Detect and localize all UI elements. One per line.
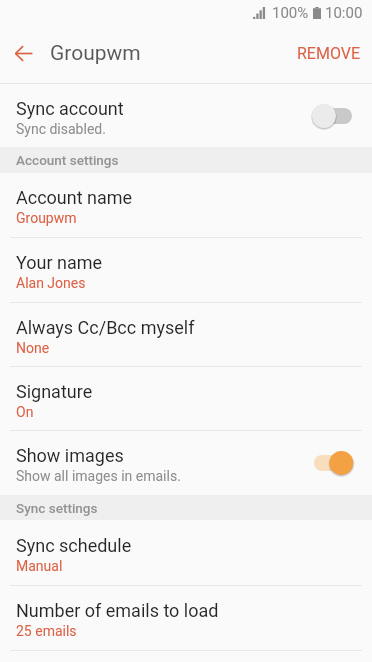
staticText: On <box>16 404 34 420</box>
staticText: Manual <box>16 558 63 574</box>
button[interactable]: Off <box>313 103 353 129</box>
staticText: Sync settings <box>16 500 98 516</box>
button[interactable]: Always Cc/Bcc myself <box>0 302 372 366</box>
button[interactable]: Signature <box>0 366 372 430</box>
button[interactable] <box>0 650 372 662</box>
staticText: 10:00 <box>325 4 363 22</box>
button[interactable]: Navigate up <box>0 30 47 77</box>
button[interactable]: REMOVE <box>286 32 372 75</box>
staticText: Groupwm <box>50 41 141 66</box>
staticText: Groupwm <box>16 210 77 226</box>
staticText: Account name <box>16 187 133 208</box>
staticText: Show all images in emails. <box>16 468 181 484</box>
button[interactable]: Your name <box>0 237 372 302</box>
staticText: Sync disabled. <box>16 121 106 137</box>
staticText: Show images <box>16 445 124 466</box>
button[interactable]: Number of emails to load <box>0 585 372 650</box>
button[interactable]: Sync schedule <box>0 520 372 585</box>
staticText: Number of emails to load <box>16 600 219 621</box>
staticText: Sync account <box>16 98 124 119</box>
staticText: REMOVE <box>297 44 361 63</box>
staticText: 100% <box>272 4 309 22</box>
staticText: 25 emails <box>16 623 77 639</box>
staticText: Sync schedule <box>16 535 132 556</box>
staticText: Account settings <box>16 152 119 168</box>
staticText: None <box>16 340 50 356</box>
button[interactable]: Sync account <box>0 84 372 147</box>
staticText: Signature <box>16 381 93 402</box>
staticText: Alan Jones <box>16 275 86 291</box>
staticText: Your name <box>16 252 103 273</box>
button[interactable]: On <box>313 450 353 476</box>
staticText: Always Cc/Bcc myself <box>16 317 195 338</box>
button[interactable]: Account name <box>0 173 372 237</box>
button[interactable]: Show images <box>0 430 372 495</box>
